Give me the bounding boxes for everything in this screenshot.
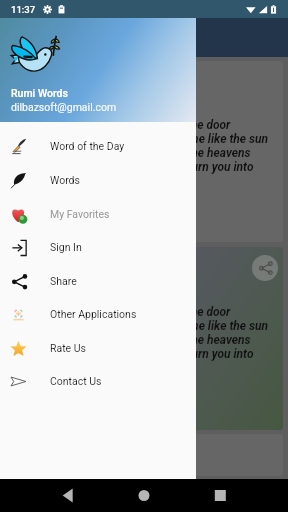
staticText: Vanish, and He'll make you shine like th… — [12, 319, 283, 333]
button[interactable]: My Favorites — [0, 197, 196, 231]
staticText: Rumi Words — [11, 87, 68, 99]
button[interactable]: Contact Us — [0, 364, 196, 398]
button[interactable] — [5, 434, 283, 476]
button[interactable]: Knock, and He'll open the door — [5, 247, 283, 430]
staticText: Knock, and He'll open the door — [12, 118, 283, 132]
staticText: Vanish, and He'll make you shine like th… — [12, 132, 283, 146]
staticText: Other Applications — [50, 308, 137, 320]
button[interactable]: Rate Us — [0, 331, 196, 365]
staticText: My Favorites — [50, 208, 110, 220]
button[interactable]: Word of the Day — [0, 129, 196, 163]
staticText: dilbazsoft@gmail.com — [11, 101, 117, 113]
staticText: Rate Us — [50, 342, 87, 354]
staticText: Sign In — [50, 241, 82, 253]
button[interactable]: Share — [252, 255, 278, 281]
button[interactable]: Words — [0, 163, 196, 197]
staticText: Contact Us — [50, 375, 102, 387]
button[interactable]: Sign In — [0, 230, 196, 264]
staticText: Fall, and He'll raise you to the heavens — [12, 333, 283, 347]
staticText: Word of the Day — [50, 140, 125, 152]
staticText: Words — [50, 174, 80, 186]
staticText: 11:37 — [11, 4, 36, 15]
staticText: Become nothing, and He'll turn you into — [12, 347, 283, 361]
staticText: Share — [50, 275, 77, 287]
staticText: Fall, and He'll raise you to the heavens — [12, 146, 283, 160]
staticText: Become nothing, and He'll turn you into — [12, 160, 283, 174]
staticText: Knock, and He'll open the door — [12, 305, 283, 319]
button[interactable]: Other Applications — [0, 297, 196, 331]
button[interactable]: Knock, and He'll open the door — [5, 61, 283, 242]
button[interactable]: Share — [0, 264, 196, 298]
